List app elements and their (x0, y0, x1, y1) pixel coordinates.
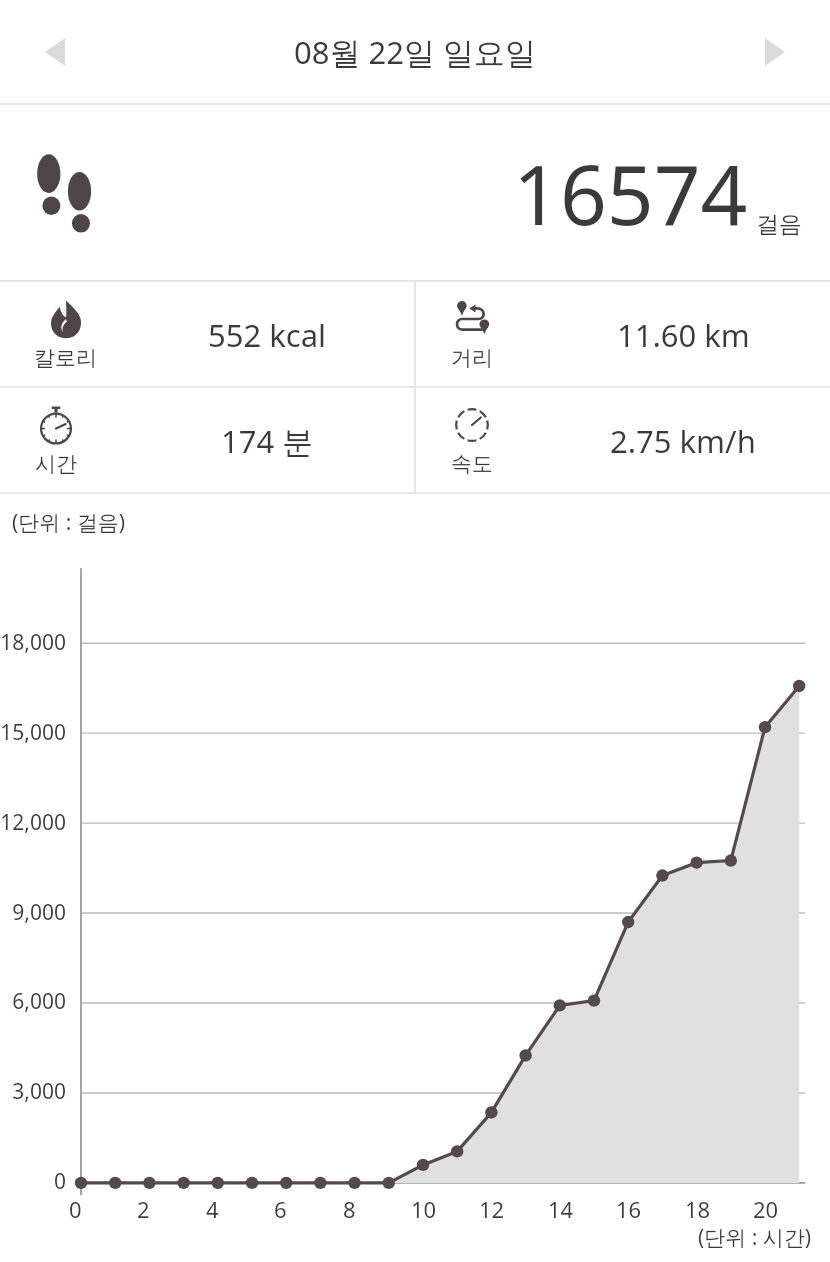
staticText: 8 (343, 1194, 356, 1224)
staticText: 4 (206, 1194, 219, 1224)
staticText: 16 (616, 1194, 642, 1224)
staticText: 14 (548, 1194, 574, 1224)
staticText: 18 (685, 1194, 711, 1224)
button[interactable]: 16574 (0, 105, 830, 280)
button[interactable]: Next day (740, 17, 810, 87)
staticText: 시간 (35, 451, 77, 477)
staticText: 12,000 (0, 808, 66, 837)
staticText: 10 (411, 1194, 437, 1224)
staticText: 16574 (513, 137, 748, 249)
staticText: 20 (753, 1194, 779, 1224)
staticText: (단위 : 걸음) (12, 508, 126, 537)
staticText: 174 분 (221, 420, 314, 462)
staticText: 6,000 (0, 987, 66, 1016)
button[interactable]: 거리 (416, 282, 830, 386)
staticText: 08월 22일 일요일 (294, 31, 537, 73)
button[interactable]: 시간 (0, 388, 414, 492)
staticText: 11.60 km (617, 314, 750, 356)
staticText: 걸음 (756, 210, 802, 239)
staticText: 속도 (451, 451, 493, 477)
staticText: 0 (0, 1167, 66, 1196)
staticText: 552 kcal (208, 314, 327, 356)
staticText: 2 (137, 1194, 150, 1224)
staticText: 18,000 (0, 628, 66, 657)
staticText: 3,000 (0, 1077, 66, 1106)
button[interactable]: Previous day (20, 17, 90, 87)
button[interactable]: 칼로리 (0, 282, 414, 386)
staticText: 15,000 (0, 718, 66, 747)
staticText: (단위 : 시간) (698, 1223, 812, 1252)
staticText: 거리 (451, 345, 493, 371)
staticText: 12 (479, 1194, 505, 1224)
staticText: 9,000 (0, 898, 66, 927)
staticText: 2.75 km/h (610, 420, 756, 462)
staticText: 칼로리 (34, 345, 97, 371)
staticText: 0 (69, 1194, 82, 1224)
staticText: 6 (274, 1194, 287, 1224)
button[interactable]: 속도 (416, 388, 830, 492)
